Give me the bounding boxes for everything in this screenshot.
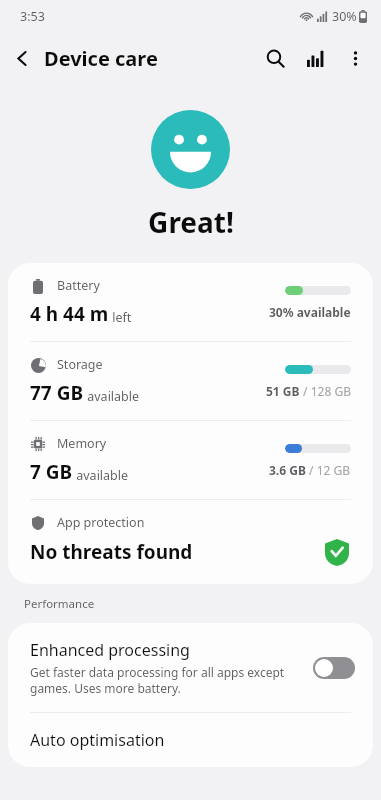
staticText: Battery — [57, 277, 100, 294]
staticText: Performance — [24, 596, 95, 612]
staticText: 7 GB — [30, 459, 73, 485]
button[interactable]: Auto optimisation — [8, 713, 373, 767]
button[interactable]: Battery — [8, 263, 373, 341]
staticText: left — [109, 309, 132, 326]
staticText: 77 GB — [30, 380, 84, 406]
staticText: Storage — [57, 356, 103, 373]
button[interactable]: Memory — [8, 421, 373, 499]
staticText: Device care — [44, 45, 158, 72]
staticText: App protection — [57, 514, 145, 531]
button[interactable]: Storage — [8, 342, 373, 420]
staticText: Great! — [148, 203, 234, 241]
button[interactable]: Back — [0, 36, 44, 80]
staticText: Auto optimisation — [30, 729, 165, 751]
button[interactable]: Enhanced processing toggle — [313, 655, 355, 681]
button[interactable]: No threats found — [323, 538, 351, 566]
staticText: No threats found — [30, 539, 193, 565]
button[interactable]: Usage statistics — [295, 38, 335, 78]
button[interactable]: App protection — [8, 500, 373, 584]
button[interactable]: Search — [255, 38, 295, 78]
staticText: Memory — [57, 435, 107, 452]
staticText: available — [73, 467, 129, 484]
staticText: / 128 GB — [300, 383, 351, 399]
staticText: 3.6 GB — [269, 462, 306, 478]
staticText: / 12 GB — [306, 462, 351, 478]
button[interactable]: More options — [335, 38, 375, 78]
staticText: 3:53 — [20, 8, 45, 25]
staticText: 51 GB — [266, 383, 300, 399]
staticText: 30% available — [269, 304, 351, 320]
staticText: 4 h 44 m — [30, 301, 109, 327]
staticText: 30% — [332, 8, 357, 25]
staticText: Get faster data processing for all apps … — [30, 664, 305, 696]
staticText: available — [84, 388, 140, 405]
button[interactable]: Enhanced processing — [8, 623, 373, 712]
staticText: Enhanced processing — [30, 639, 190, 661]
